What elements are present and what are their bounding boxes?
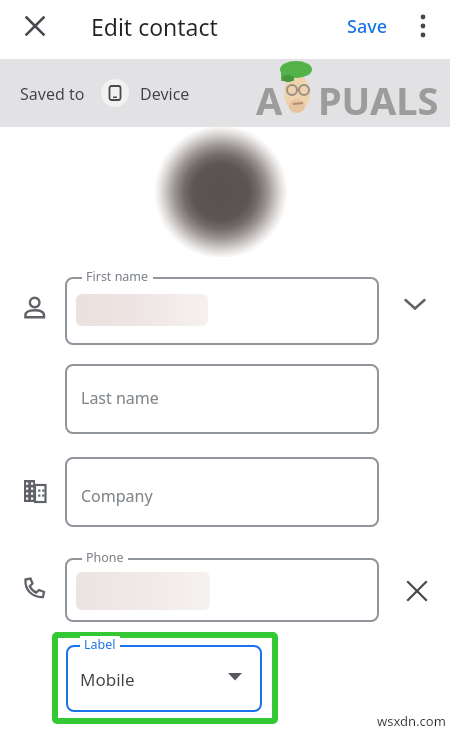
staticText: Company (81, 485, 153, 507)
button[interactable] (65, 277, 379, 345)
button[interactable] (403, 577, 431, 605)
button[interactable] (66, 645, 262, 712)
staticText: Mobile (80, 668, 135, 691)
button[interactable] (410, 1, 436, 51)
button[interactable] (399, 288, 431, 320)
staticText: Last name (81, 387, 159, 409)
staticText: First name (86, 268, 149, 285)
button[interactable] (22, 13, 48, 39)
staticText: A (256, 74, 283, 126)
button[interactable] (101, 79, 129, 107)
staticText: wsxdn.com (377, 712, 446, 730)
staticText: Save (347, 14, 388, 39)
staticText: Edit contact (91, 11, 218, 42)
button[interactable]: Save (335, 8, 400, 44)
button[interactable] (65, 457, 379, 527)
staticText: Device (140, 83, 190, 105)
staticText: PUALS (318, 74, 439, 126)
staticText: Label (84, 636, 116, 653)
button[interactable] (65, 364, 379, 434)
staticText: Phone (86, 549, 124, 566)
staticText: Saved to (20, 83, 85, 105)
button[interactable] (65, 558, 379, 622)
